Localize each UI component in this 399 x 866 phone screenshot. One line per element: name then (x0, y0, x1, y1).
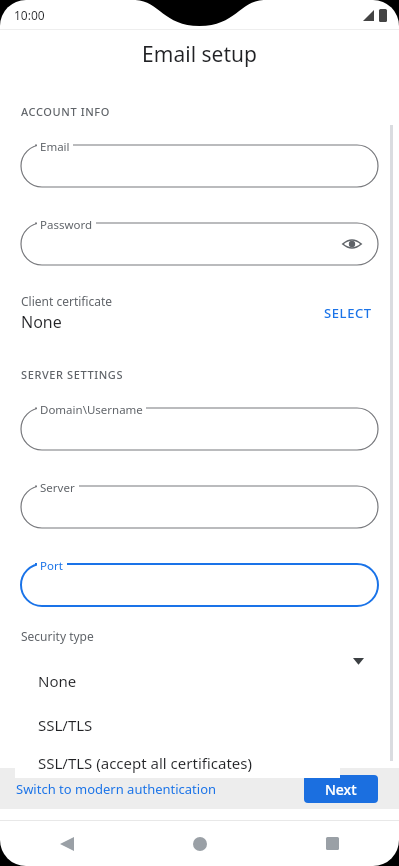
staticText: None (38, 671, 77, 691)
button[interactable]: Domain\Username (21, 408, 378, 450)
button[interactable]: Recents (266, 821, 399, 866)
staticText: Security type (21, 628, 94, 644)
staticText: Switch to modern authentication (16, 780, 217, 798)
staticText: Password (40, 217, 93, 233)
button[interactable]: Port (21, 564, 378, 606)
staticText: ACCOUNT INFO (21, 104, 110, 119)
staticText: None (21, 311, 62, 333)
staticText: Email (40, 139, 70, 155)
button[interactable]: Password (21, 223, 378, 265)
staticText: SERVER SETTINGS (21, 367, 124, 382)
staticText: SSL/TLS (38, 715, 93, 735)
button[interactable]: Next (304, 775, 378, 803)
staticText: Next (325, 780, 357, 799)
button[interactable]: SELECT (318, 298, 378, 328)
button[interactable]: SSL/TLS (accept all certificates) (15, 747, 340, 778)
button[interactable]: None (15, 659, 340, 703)
button[interactable]: SSL/TLS (15, 703, 340, 747)
button[interactable]: Client certificate (21, 293, 318, 333)
button[interactable]: Server (21, 486, 378, 528)
button[interactable]: Back (0, 821, 133, 866)
staticText: Server (40, 480, 75, 496)
staticText: SELECT (324, 304, 372, 322)
staticText: SSL/TLS (accept all certificates) (38, 753, 252, 773)
button[interactable]: Email (21, 145, 378, 187)
staticText: Port (40, 558, 63, 574)
button[interactable]: Home (133, 821, 266, 866)
staticText: Email setup (142, 40, 257, 69)
staticText: Client certificate (21, 293, 113, 309)
staticText: Domain\Username (40, 402, 143, 418)
button[interactable]: Switch to modern authentication (16, 774, 217, 804)
staticText: 10:00 (14, 7, 45, 23)
button[interactable]: Show password (340, 232, 364, 256)
